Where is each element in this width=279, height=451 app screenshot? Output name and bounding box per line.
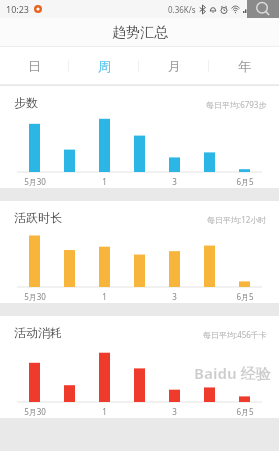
staticText: 5月30: [24, 176, 46, 187]
staticText: 年: [238, 58, 251, 74]
staticText: 5月30: [24, 406, 46, 417]
staticText: 每日平均:12小时: [207, 214, 267, 225]
staticText: 每日平均:6793步: [206, 99, 267, 110]
staticText: 步数: [14, 95, 38, 110]
button[interactable]: 步数: [0, 86, 279, 188]
staticText: 活动消耗: [14, 325, 62, 340]
staticText: 活跃时长: [14, 210, 62, 225]
staticText: 6月5: [236, 291, 254, 302]
staticText: 趋势汇总: [112, 24, 168, 42]
button[interactable]: 活跃时长: [0, 201, 279, 303]
staticText: 1: [102, 406, 107, 417]
staticText: 6月5: [236, 176, 254, 187]
button[interactable]: 日: [0, 47, 69, 85]
staticText: 6月5: [236, 406, 254, 417]
staticText: 3: [172, 291, 177, 302]
staticText: 1: [102, 291, 107, 302]
staticText: 10:23: [6, 3, 30, 15]
staticText: 月: [168, 58, 181, 74]
staticText: Baidu 经验: [194, 363, 271, 383]
staticText: 日: [28, 58, 41, 74]
button[interactable]: 周: [69, 47, 139, 85]
button[interactable]: 活动消耗: [0, 316, 279, 418]
staticText: 3: [172, 176, 177, 187]
staticText: 0.36K/s: [168, 4, 196, 15]
button[interactable]: 月: [139, 47, 209, 85]
staticText: 1: [102, 176, 107, 187]
button[interactable]: 年: [209, 47, 279, 85]
button[interactable]: Search: [247, 0, 279, 18]
staticText: 周: [98, 58, 111, 74]
staticText: 每日平均:456千卡: [203, 329, 267, 340]
staticText: 3: [172, 406, 177, 417]
staticText: 5月30: [24, 291, 46, 302]
